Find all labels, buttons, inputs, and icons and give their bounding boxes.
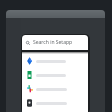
button[interactable]: App result [22, 96, 88, 110]
other: App result [27, 99, 32, 107]
button[interactable]: App result [22, 82, 88, 96]
staticText: Search in Setapp [33, 39, 73, 46]
other: App result [27, 71, 32, 79]
other: App result [27, 85, 32, 93]
button[interactable]: App result [22, 68, 88, 82]
other: App result [27, 57, 32, 65]
button[interactable]: App result [22, 54, 88, 68]
button[interactable]: Search in Setapp [22, 35, 88, 50]
